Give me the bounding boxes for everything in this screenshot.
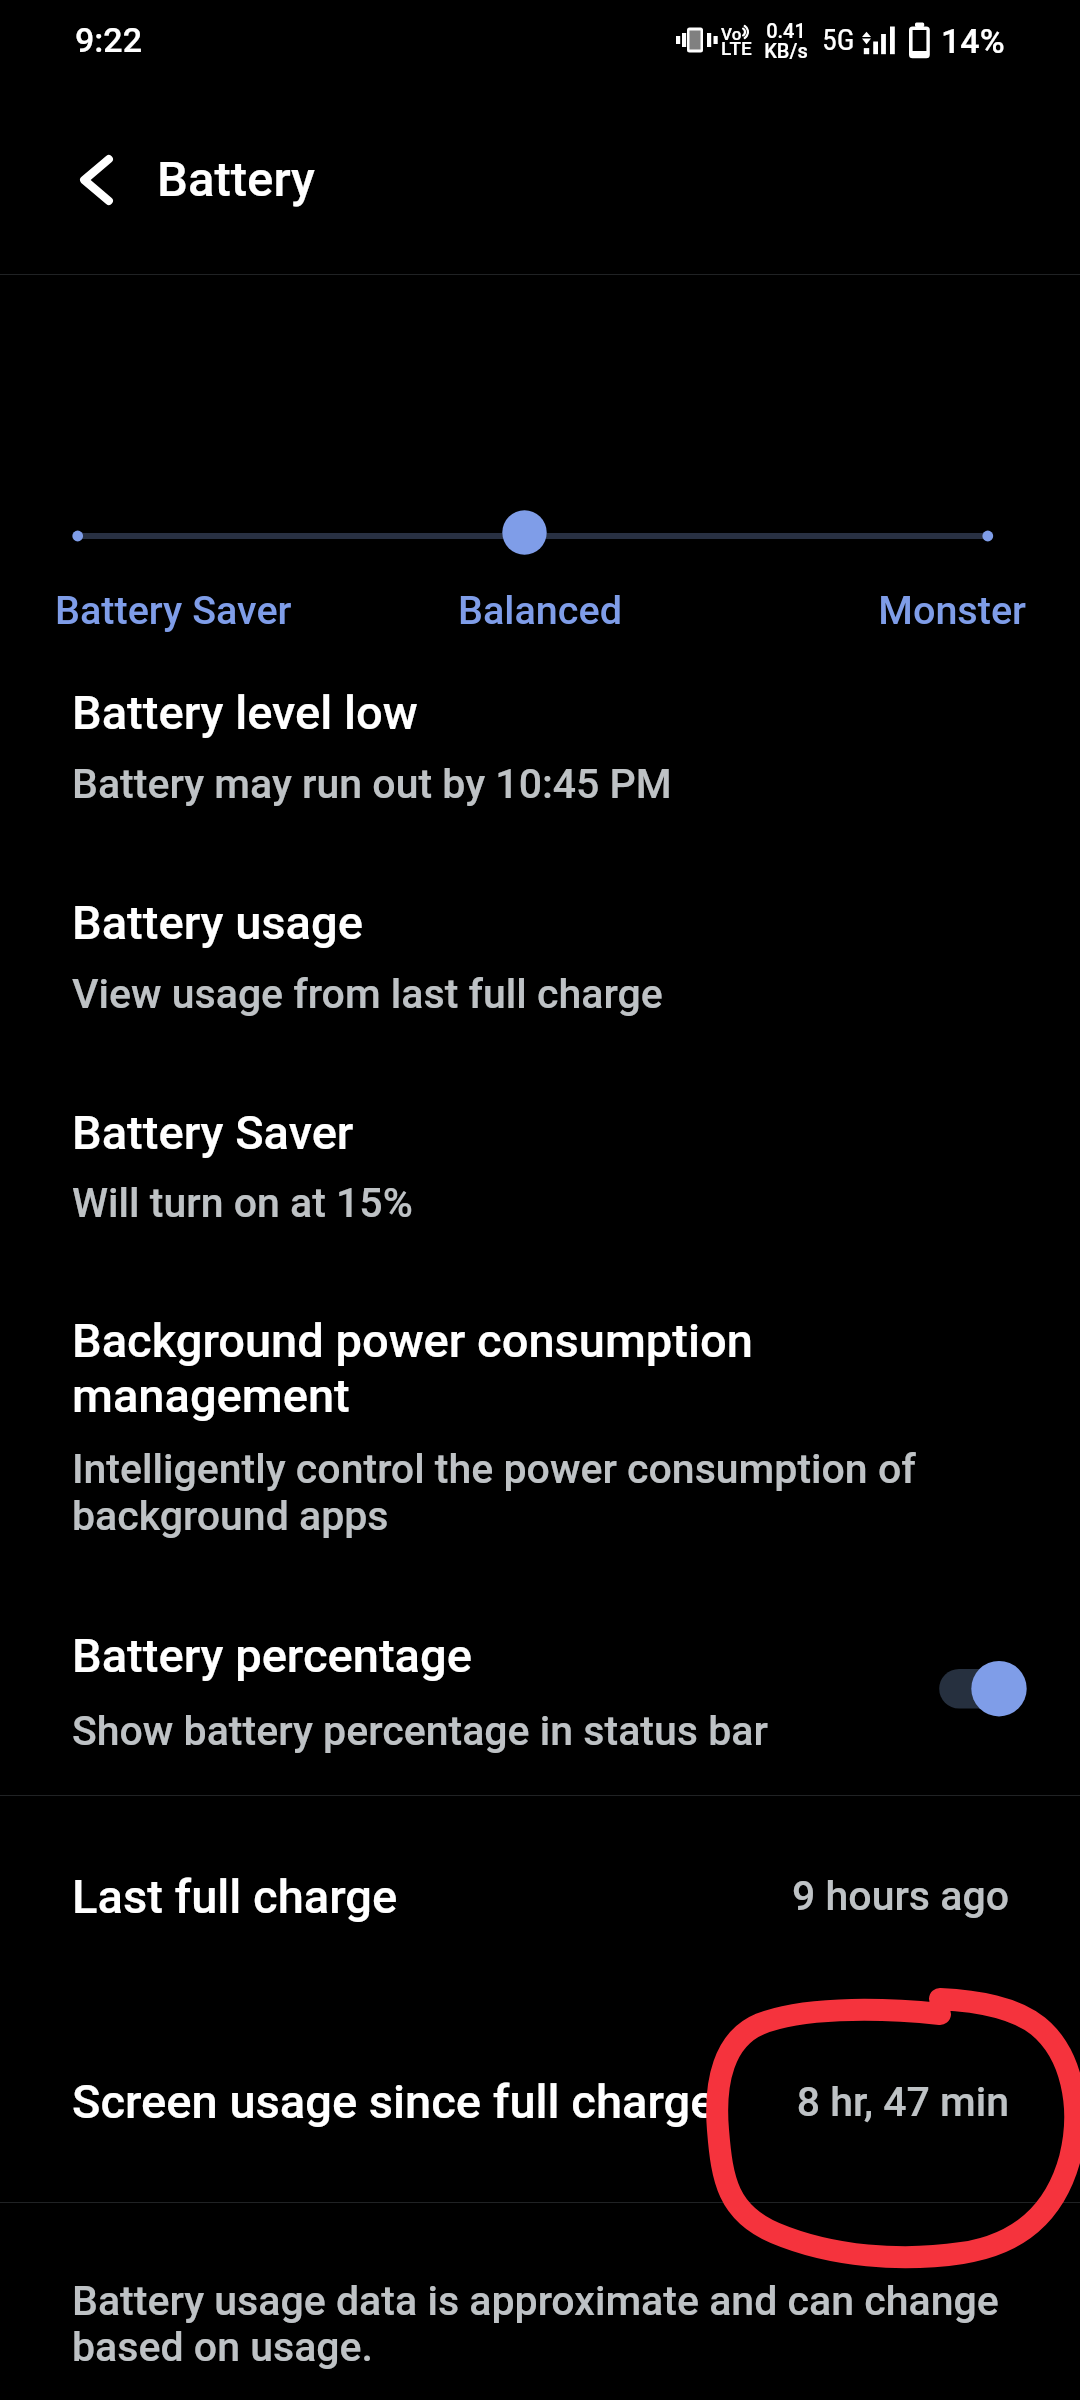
staticText: Battery bbox=[157, 151, 315, 208]
staticText: Last full charge bbox=[72, 1869, 1072, 1924]
staticText: Background power consumption management bbox=[72, 1313, 872, 1423]
staticText: Battery level low bbox=[72, 685, 1072, 740]
button[interactable]: Performance mode bbox=[0, 470, 1080, 655]
staticText: 8 hr, 47 min bbox=[0, 2078, 1009, 2126]
button[interactable]: Back bbox=[56, 138, 140, 222]
staticText: Will turn on at 15% bbox=[72, 1179, 1072, 1227]
staticText: View usage from last full charge bbox=[72, 970, 1072, 1018]
staticText: 14% bbox=[941, 21, 1005, 61]
staticText: Show battery percentage in status bar bbox=[72, 1707, 1072, 1755]
staticText: 9 hours ago bbox=[0, 1872, 1009, 1920]
staticText: Battery usage bbox=[72, 895, 1072, 950]
button[interactable]: Battery usage bbox=[0, 865, 1080, 1060]
button[interactable]: Background power consumption management bbox=[0, 1285, 1080, 1595]
staticText: Battery percentage bbox=[72, 1628, 1072, 1683]
staticText: LTE bbox=[721, 37, 752, 59]
staticText: Monster bbox=[0, 587, 1026, 633]
button[interactable]: Screen usage since full charge bbox=[0, 2020, 1080, 2202]
button[interactable]: Battery Saver bbox=[0, 1075, 1080, 1270]
staticText: Battery may run out by 10:45 PM bbox=[72, 760, 1072, 808]
staticText: KB/s bbox=[764, 39, 808, 62]
button[interactable]: Battery level low bbox=[0, 655, 1080, 850]
button[interactable]: Last full charge bbox=[0, 1820, 1080, 1990]
staticText: 5G bbox=[822, 22, 855, 57]
staticText: Battery Saver bbox=[55, 587, 1055, 633]
staticText: Battery Saver bbox=[72, 1105, 1072, 1160]
staticText: Intelligently control the power consumpt… bbox=[72, 1445, 972, 1540]
button[interactable]: Battery percentage switch, on bbox=[915, 1630, 1040, 1740]
staticText: 9:22 bbox=[75, 20, 142, 60]
staticText: Screen usage since full charge bbox=[72, 2074, 1072, 2129]
staticText: Battery usage data is approximate and ca… bbox=[72, 2277, 1052, 2371]
staticText: Balanced bbox=[0, 587, 1080, 633]
button[interactable]: Battery percentage bbox=[0, 1600, 1080, 1795]
staticText: Vo bbox=[721, 24, 742, 44]
staticText: 0.41 bbox=[764, 19, 808, 42]
